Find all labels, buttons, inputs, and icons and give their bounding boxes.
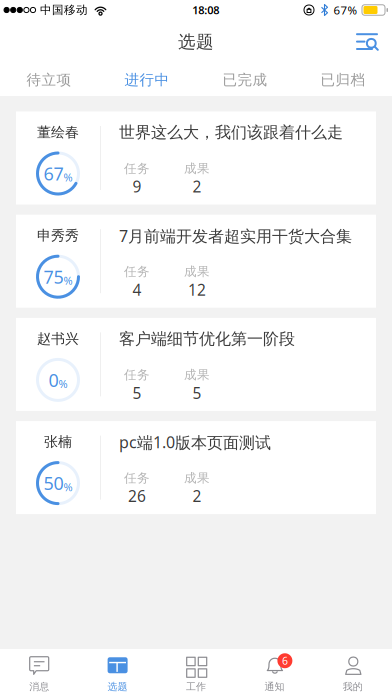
staticText: 6 [282,654,288,668]
staticText: 成果 [184,264,210,279]
staticText: 成果 [184,367,210,383]
staticText: 世界这么大，我们该跟着什么走 [119,122,343,143]
staticText: 客户端细节优化第一阶段 [119,329,295,349]
staticText: 任务 [124,470,150,486]
staticText: 我的 [343,680,363,693]
staticText: % [63,170,72,185]
staticText: 2 [192,176,201,197]
button[interactable]: 申秀秀 [16,215,376,308]
button[interactable]: 筛选 [344,20,392,64]
staticText: 选题 [108,680,128,693]
staticText: % [58,376,67,391]
staticText: 任务 [124,161,150,176]
staticText: 2 [192,485,201,507]
staticText: 67% [333,2,357,18]
button[interactable]: 张楠 [16,421,376,514]
staticText: 张楠 [44,433,72,451]
staticText: 成果 [184,161,210,176]
staticText: % [63,479,72,494]
button[interactable]: 赵书兴 [16,318,376,411]
button[interactable]: 已完成 [196,64,294,96]
staticText: 50 [43,471,63,495]
staticText: 任务 [124,367,150,383]
staticText: 进行中 [124,71,169,89]
staticText: 5 [192,382,201,403]
staticText: 工作 [186,680,206,693]
staticText: 9 [132,176,141,197]
staticText: pc端1.0版本页面测试 [119,431,271,453]
button[interactable]: 选题 [78,648,157,696]
staticText: 待立项 [26,71,71,89]
staticText: 中国移动 [40,3,88,17]
staticText: 消息 [29,680,49,693]
button[interactable]: 董绘春 [16,111,376,204]
staticText: 5 [132,382,141,403]
staticText: 已归档 [320,71,365,89]
staticText: 67 [43,161,63,186]
button[interactable]: 进行中 [98,64,196,96]
button[interactable]: 6 [235,648,314,696]
button[interactable]: 我的 [314,648,392,696]
staticText: 赵书兴 [37,330,79,347]
staticText: 已完成 [222,71,267,89]
button[interactable]: 待立项 [0,64,98,96]
staticText: 12 [188,279,206,300]
staticText: 董绘春 [37,123,79,141]
staticText: 通知 [264,680,284,693]
button[interactable]: 消息 [0,648,78,696]
staticText: 4 [132,279,141,300]
staticText: % [63,273,72,288]
staticText: 26 [128,485,146,507]
staticText: 0 [48,368,58,392]
button[interactable]: 工作 [157,648,235,696]
staticText: 申秀秀 [37,227,79,244]
staticText: 7月前端开发者超实用干货大合集 [119,225,352,247]
staticText: 选题 [178,31,214,53]
staticText: 75 [43,264,63,289]
staticText: 任务 [124,264,150,279]
button[interactable]: 已归档 [294,64,392,96]
staticText: 成果 [184,470,210,486]
staticText: 18:08 [192,2,219,17]
